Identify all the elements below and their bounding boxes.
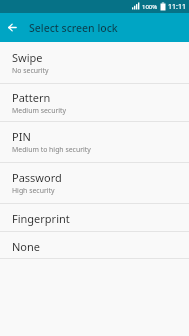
staticText: Medium to high security xyxy=(12,145,91,154)
staticText: Password xyxy=(12,170,62,185)
staticText: Pattern xyxy=(12,90,51,105)
button[interactable]: Pattern xyxy=(0,84,189,122)
button[interactable]: Swipe xyxy=(0,42,189,84)
staticText: No security xyxy=(12,66,49,75)
staticText: Medium security xyxy=(12,106,67,115)
button[interactable]: Fingerprint xyxy=(0,204,189,232)
button[interactable]: None xyxy=(0,232,189,259)
staticText: Select screen lock xyxy=(29,21,118,35)
staticText: High security xyxy=(12,186,55,195)
staticText: Fingerprint xyxy=(12,211,70,226)
staticText: 11:11 xyxy=(168,2,186,12)
button[interactable] xyxy=(0,13,25,42)
staticText: Swipe xyxy=(12,50,43,65)
button[interactable]: Password xyxy=(0,163,189,204)
staticText: 100% xyxy=(142,3,158,11)
staticText: PIN xyxy=(12,129,31,144)
staticText: None xyxy=(12,239,41,254)
button[interactable]: PIN xyxy=(0,122,189,163)
